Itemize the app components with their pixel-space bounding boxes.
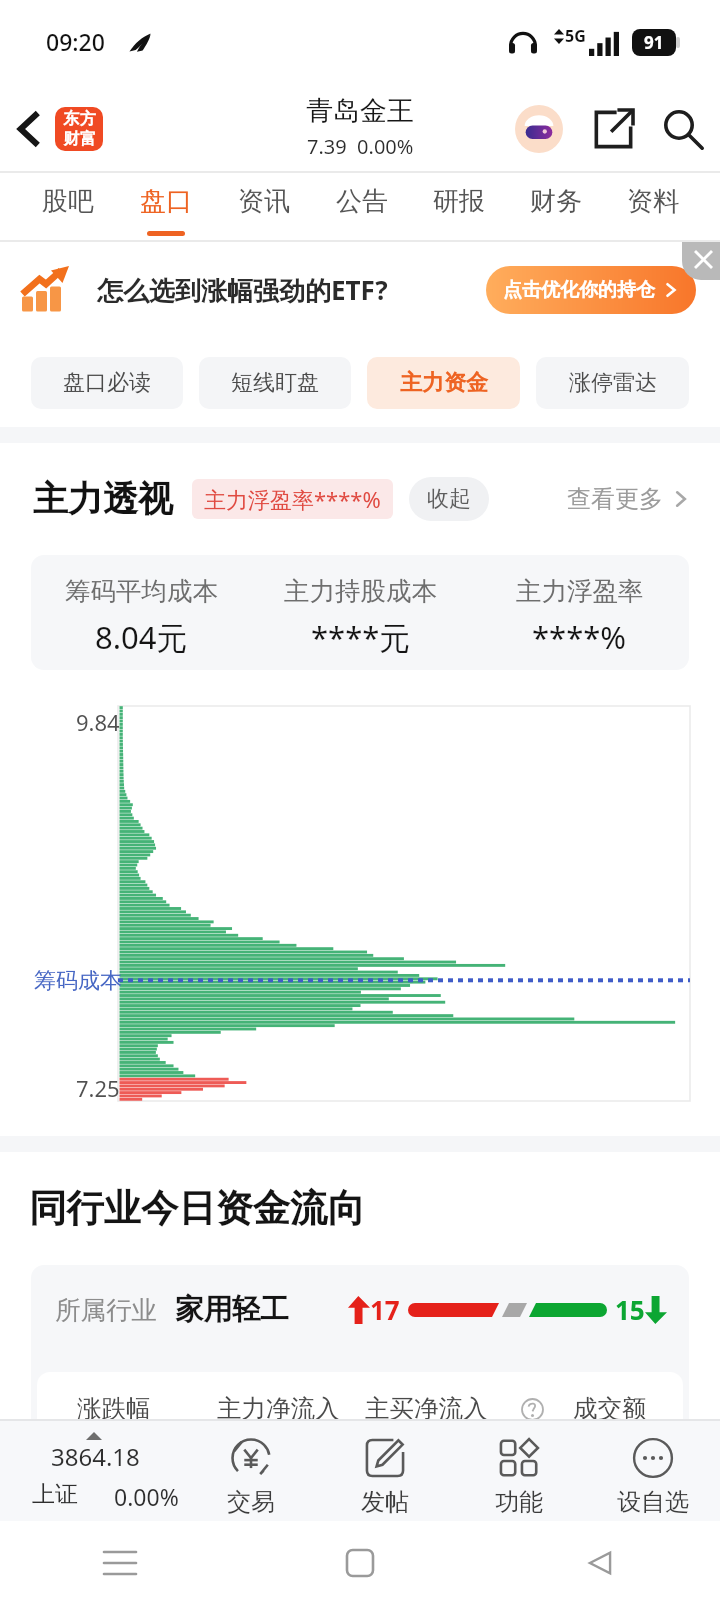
staticText: 财富 xyxy=(63,129,96,149)
staticText: 15 xyxy=(615,1292,645,1327)
staticText: 主力净流入 xyxy=(217,1393,340,1424)
staticText: 主力持股成本 xyxy=(284,575,437,607)
staticText: 所属行业 xyxy=(55,1294,157,1326)
button[interactable]: 盘口 xyxy=(117,173,215,242)
staticText: 主力透视 xyxy=(33,477,173,521)
staticText: 家用轻工 xyxy=(175,1292,289,1328)
button[interactable]: 公告 xyxy=(313,173,410,242)
staticText: 主买净流入 xyxy=(365,1393,488,1424)
staticText: 成交额 xyxy=(573,1393,647,1424)
button[interactable]: 查看更多 xyxy=(567,484,689,514)
staticText: 筹码平均成本 xyxy=(65,575,218,607)
button[interactable]: 盘口必读 xyxy=(31,357,183,409)
staticText: 设自选 xyxy=(617,1487,689,1517)
staticText: 研报 xyxy=(433,185,485,218)
staticText: 3864.18 xyxy=(51,1440,140,1473)
button[interactable]: 研报 xyxy=(410,173,507,242)
staticText: ****元 xyxy=(311,616,411,658)
staticText: 同行业今日资金流向 xyxy=(29,1185,365,1232)
staticText: 查看更多 xyxy=(567,484,663,514)
staticText: 5G xyxy=(565,25,586,47)
button[interactable]: 主力资金 xyxy=(367,357,520,409)
staticText: 交易 xyxy=(227,1487,275,1517)
staticText: 盘口必读 xyxy=(63,369,151,397)
staticText: 主力资金 xyxy=(400,369,488,397)
button[interactable]: Search xyxy=(655,101,711,157)
staticText: 怎么选到涨幅强劲的ETF? xyxy=(97,272,388,308)
button[interactable]: 点击优化你的持仓 xyxy=(486,266,696,314)
staticText: 发帖 xyxy=(361,1487,409,1517)
staticText: 9.84 xyxy=(76,707,120,737)
button[interactable]: 资料 xyxy=(604,173,701,242)
staticText: 0.00% xyxy=(114,1481,179,1512)
button[interactable]: 交易 xyxy=(184,1424,318,1517)
staticText: 上证 xyxy=(32,1480,78,1509)
staticText: 资讯 xyxy=(238,185,290,218)
staticText: 收起 xyxy=(427,485,471,513)
staticText: 8.04元 xyxy=(95,616,188,658)
staticText: 股吧 xyxy=(42,185,94,218)
staticText: 涨跌幅 xyxy=(77,1393,151,1424)
button[interactable]: 收起 xyxy=(409,477,489,521)
staticText: 17 xyxy=(370,1292,400,1327)
staticText: 资料 xyxy=(627,185,679,218)
button[interactable]: 功能 xyxy=(452,1424,586,1517)
staticText: 功能 xyxy=(495,1487,543,1517)
staticText: 91 xyxy=(644,31,664,54)
button[interactable]: AI assistant xyxy=(512,102,566,156)
button[interactable]: East Money xyxy=(55,107,103,151)
button[interactable]: 发帖 xyxy=(318,1424,452,1517)
button[interactable]: 涨停雷达 xyxy=(536,357,689,409)
staticText: 财务 xyxy=(530,185,582,218)
staticText: 点击优化你的持仓 xyxy=(503,278,655,302)
staticText: 主力浮盈率 xyxy=(516,575,644,607)
staticText: 青岛金王 xyxy=(306,94,414,128)
button[interactable]: 财务 xyxy=(507,173,604,242)
staticText: 短线盯盘 xyxy=(231,369,319,397)
button[interactable]: 设自选 xyxy=(586,1424,720,1517)
staticText: 09:20 xyxy=(46,26,105,57)
other: Back xyxy=(588,1550,612,1576)
staticText: ****% xyxy=(532,616,627,658)
button[interactable]: 短线盯盘 xyxy=(199,357,351,409)
button[interactable]: Back xyxy=(8,94,50,164)
other: Recent apps xyxy=(104,1552,136,1574)
staticText: 7.25 xyxy=(76,1073,120,1103)
button[interactable]: 资讯 xyxy=(215,173,313,242)
staticText: 筹码成本 xyxy=(34,967,122,995)
staticText: 公告 xyxy=(336,185,388,218)
staticText: 7.39 0.00% xyxy=(307,133,414,160)
staticText: 盘口 xyxy=(140,185,192,218)
staticText: 东方 xyxy=(63,109,96,129)
button[interactable]: 股吧 xyxy=(19,173,117,242)
staticText: 涨停雷达 xyxy=(569,369,657,397)
button[interactable]: Share xyxy=(585,101,641,157)
other: Home xyxy=(347,1550,373,1576)
button[interactable]: 3864.18 xyxy=(0,1419,184,1521)
staticText: 主力浮盈率****% xyxy=(204,484,381,514)
button[interactable]: Close ad xyxy=(682,242,720,280)
